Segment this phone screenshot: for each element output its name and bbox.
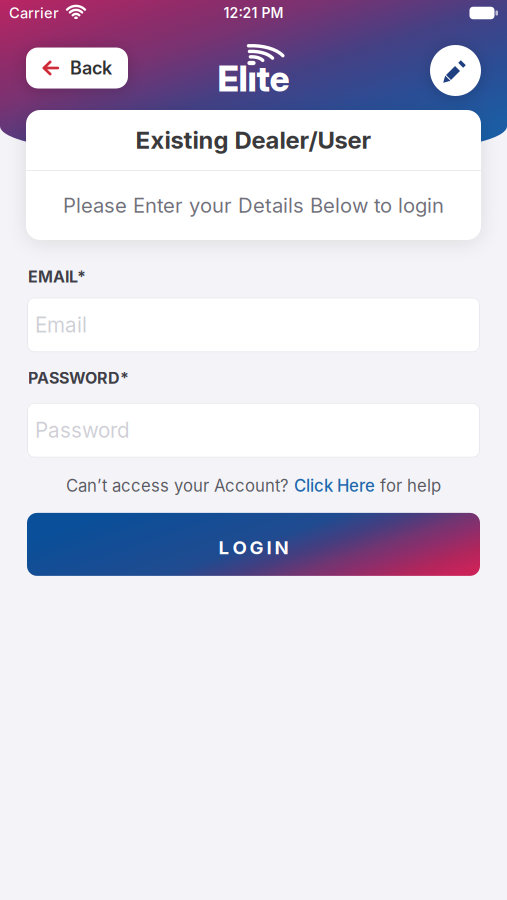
staticText: Elıte <box>217 58 289 100</box>
staticText: Carrier <box>9 4 59 22</box>
button[interactable]: Edit <box>430 45 481 96</box>
button[interactable]: L O G I N <box>0 513 507 576</box>
button[interactable]: Email <box>0 297 507 352</box>
staticText: PASSWORD* <box>28 368 129 388</box>
staticText: Existing Dealer/User <box>135 125 371 154</box>
staticText: Click Here <box>294 476 375 496</box>
staticText: 12:21 PM <box>223 4 283 21</box>
staticText: Can’t access your Account? <box>66 476 294 496</box>
button[interactable]: Back <box>26 47 128 88</box>
staticText: L O G I N <box>218 536 288 559</box>
staticText: for help <box>375 476 441 496</box>
button[interactable]: Password <box>0 403 507 458</box>
staticText: EMAIL* <box>28 267 86 286</box>
staticText: Back <box>70 57 112 79</box>
staticText: Please Enter your Details Below to login <box>63 193 444 218</box>
staticText: Email <box>35 312 87 337</box>
staticText: Password <box>35 418 130 443</box>
button[interactable]: Click Here <box>294 476 375 496</box>
